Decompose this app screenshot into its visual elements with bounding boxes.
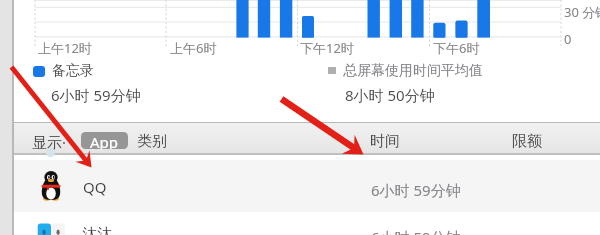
staticText: 限额	[512, 132, 542, 151]
staticText: 上午12时	[38, 39, 92, 57]
button[interactable]	[14, 160, 600, 212]
button[interactable]: 限额	[512, 132, 542, 151]
staticText: 6小时 59分钟	[371, 227, 461, 235]
staticText: 下午6时	[433, 39, 480, 57]
button[interactable]: 类别	[137, 132, 167, 151]
staticText: 0	[564, 30, 572, 48]
staticText: 30 分钟	[564, 3, 600, 21]
staticText: QQ	[83, 177, 107, 197]
staticText: App	[90, 132, 119, 149]
other: Annotation arrows	[0, 0, 600, 235]
staticText: 6小时 59分钟	[371, 180, 461, 200]
staticText: 备忘录	[52, 62, 94, 80]
staticText: 6小时 59分钟	[51, 85, 141, 105]
button[interactable]: App	[81, 132, 128, 149]
staticText: 时间	[370, 132, 400, 151]
staticText: 汰汰	[82, 225, 112, 235]
staticText: 8小时 50分钟	[345, 85, 435, 105]
staticText: 类别	[137, 132, 167, 151]
staticText: 下午12时	[300, 39, 354, 57]
staticText: 上午6时	[170, 39, 217, 57]
staticText: 总屏幕使用时间平均值	[343, 62, 483, 80]
button[interactable]: 时间	[370, 132, 400, 151]
button[interactable]	[14, 212, 600, 235]
staticText: 显示·	[32, 132, 67, 152]
